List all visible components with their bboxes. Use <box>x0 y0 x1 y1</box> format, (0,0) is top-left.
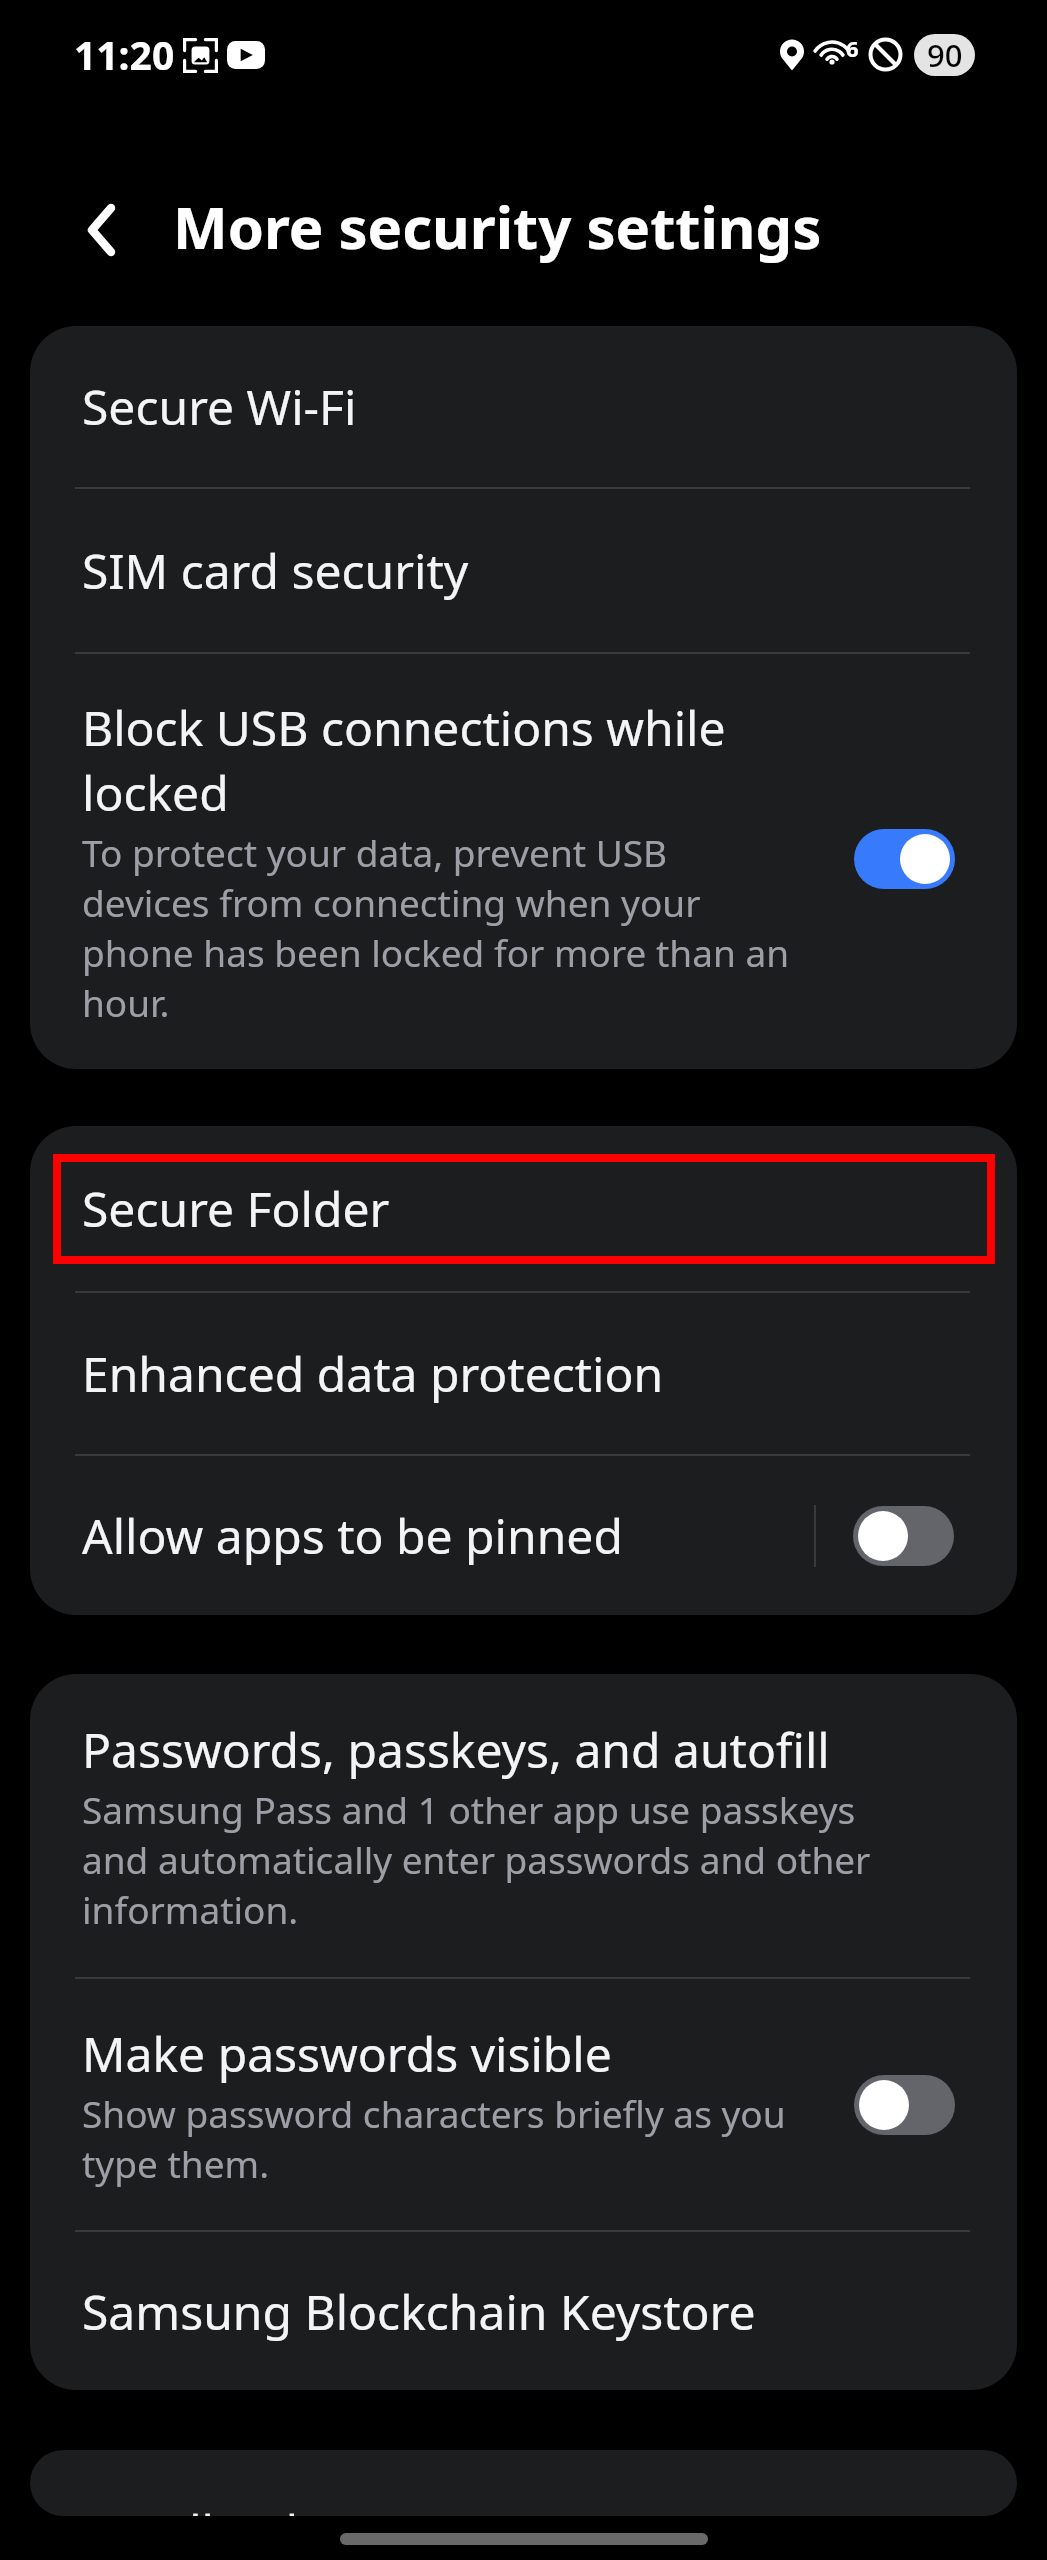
staticText: Block USB connections while locked <box>82 695 742 825</box>
staticText: 6 <box>846 33 859 63</box>
button[interactable]: Block USB connections while locked <box>30 654 1017 1069</box>
staticText: Enhanced data protection <box>82 1341 664 1406</box>
staticText: 11:20 <box>74 28 175 81</box>
button[interactable]: Switch on <box>854 829 955 889</box>
button[interactable]: Back <box>62 168 142 248</box>
button[interactable]: Switch off <box>854 2075 955 2135</box>
staticText: Samsung Blockchain Keystore <box>82 2279 756 2344</box>
staticText: Secure Folder <box>82 1176 390 1241</box>
button[interactable]: Make passwords visible <box>30 1979 1017 2230</box>
staticText: Make passwords visible <box>82 2021 612 2086</box>
staticText: To protect your data, prevent USB device… <box>82 828 794 1028</box>
staticText: Allow apps to be pinned <box>82 1503 623 1568</box>
staticText: Secure Wi-Fi <box>82 374 357 439</box>
button[interactable]: Secure Wi-Fi <box>30 326 1017 487</box>
button[interactable]: Passwords, passkeys, and autofill <box>30 1674 1017 1977</box>
staticText: More security settings <box>173 187 822 266</box>
button[interactable]: Secure Folder <box>30 1126 1017 1291</box>
button[interactable]: SIM card security <box>30 489 1017 652</box>
staticText: 90 <box>927 34 963 76</box>
button[interactable]: Enhanced data protection <box>30 1293 1017 1454</box>
staticText: Show password characters briefly as you … <box>82 2089 838 2189</box>
button[interactable]: Allow apps to be pinned <box>30 1456 814 1615</box>
staticText: Samsung Pass and 1 other app use passkey… <box>82 1785 872 1935</box>
staticText: SIM card security <box>82 538 469 603</box>
button[interactable]: Samsung Blockchain Keystore <box>30 2232 1017 2390</box>
button[interactable]: Switch off <box>853 1506 954 1566</box>
staticText: Install unknown apps <box>76 2499 558 2516</box>
staticText: Passwords, passkeys, and autofill <box>82 1717 830 1782</box>
button[interactable]: Install unknown apps <box>30 2450 1017 2516</box>
